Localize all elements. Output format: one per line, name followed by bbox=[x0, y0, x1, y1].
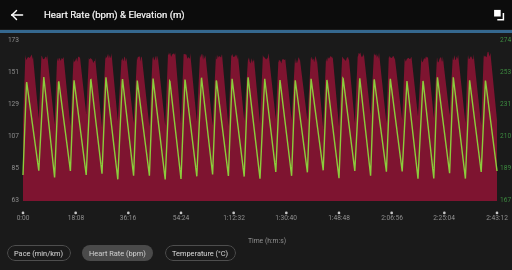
staticText: 1:12:32 bbox=[209, 214, 259, 222]
staticText: 63 bbox=[0, 196, 19, 204]
staticText: 253 bbox=[500, 68, 512, 76]
staticText: 231 bbox=[500, 100, 512, 108]
staticText: 0:00 bbox=[0, 214, 48, 222]
staticText: 18:08 bbox=[51, 214, 101, 222]
staticText: 167 bbox=[500, 196, 512, 204]
staticText: 1:30:40 bbox=[261, 214, 311, 222]
staticText: 2:43:12 bbox=[472, 214, 512, 222]
staticText: 36:16 bbox=[103, 214, 153, 222]
staticText: 2:25:04 bbox=[419, 214, 469, 222]
button[interactable]: Enter picture in picture bbox=[487, 4, 509, 26]
staticText: Heart Rate (bpm) & Elevation (m) bbox=[44, 9, 185, 20]
staticText: 1:48:48 bbox=[314, 214, 364, 222]
staticText: Temperature (°C) bbox=[172, 249, 229, 258]
staticText: 189 bbox=[500, 164, 512, 172]
staticText: Heart Rate (bpm) bbox=[89, 249, 146, 258]
staticText: 210 bbox=[500, 132, 512, 140]
staticText: Time (h:m:s) bbox=[237, 237, 297, 245]
staticText: 107 bbox=[0, 132, 19, 140]
button[interactable]: Temperature (°C) bbox=[165, 245, 236, 261]
staticText: Pace (min/km) bbox=[14, 249, 64, 258]
staticText: 151 bbox=[0, 68, 19, 76]
staticText: 274 bbox=[500, 36, 512, 44]
staticText: 85 bbox=[0, 164, 19, 172]
staticText: 129 bbox=[0, 100, 19, 108]
button[interactable]: Back bbox=[5, 3, 29, 27]
staticText: 54:24 bbox=[156, 214, 206, 222]
button[interactable]: Heart Rate (bpm) bbox=[82, 245, 153, 261]
staticText: 173 bbox=[0, 36, 19, 44]
staticText: 2:06:56 bbox=[367, 214, 417, 222]
button[interactable]: Pace (min/km) bbox=[7, 245, 71, 261]
